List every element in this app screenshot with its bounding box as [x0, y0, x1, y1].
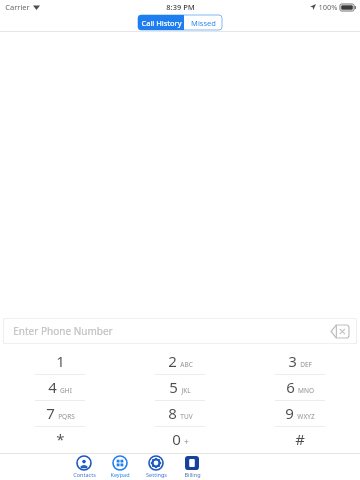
staticText: *: [56, 429, 65, 449]
button[interactable]: Contacts: [66, 454, 102, 480]
button[interactable]: 8: [120, 401, 240, 427]
staticText: JKL: [181, 386, 191, 395]
staticText: 3: [288, 351, 297, 371]
staticText: 6: [286, 377, 295, 397]
staticText: 9: [285, 403, 294, 423]
button[interactable]: 2: [120, 349, 240, 375]
button[interactable]: *: [0, 427, 120, 453]
staticText: Contacts: [73, 471, 96, 478]
button[interactable]: Settings: [138, 454, 174, 480]
staticText: DEF: [300, 360, 312, 369]
staticText: 1: [56, 351, 65, 371]
staticText: 5: [169, 377, 178, 397]
staticText: Billing: [184, 471, 201, 478]
staticText: Keypad: [110, 471, 130, 478]
staticText: PQRS: [58, 412, 75, 421]
button[interactable]: 0: [120, 427, 240, 453]
staticText: 0: [172, 429, 181, 449]
staticText: WXYZ: [297, 412, 315, 421]
staticText: Enter Phone Number: [13, 324, 113, 338]
staticText: Missed: [191, 18, 216, 28]
button[interactable]: Enter Phone Number: [3, 318, 357, 344]
button[interactable]: 7: [0, 401, 120, 427]
staticText: Call History: [141, 18, 182, 28]
staticText: ABC: [180, 360, 193, 369]
button[interactable]: 9: [240, 401, 360, 427]
staticText: MNO: [298, 386, 314, 395]
button[interactable]: 3: [240, 349, 360, 375]
button[interactable]: Delete: [331, 325, 349, 338]
staticText: 2: [168, 351, 177, 371]
staticText: Settings: [146, 471, 167, 478]
staticText: 7: [46, 403, 55, 423]
staticText: 4: [48, 377, 57, 397]
button[interactable]: 4: [0, 375, 120, 401]
staticText: GHI: [60, 386, 72, 395]
button[interactable]: 5: [120, 375, 240, 401]
button[interactable]: 6: [240, 375, 360, 401]
button[interactable]: 1: [0, 349, 120, 375]
button[interactable]: Missed: [184, 15, 222, 30]
button[interactable]: Call History: [138, 15, 184, 30]
staticText: 100%: [318, 2, 338, 12]
staticText: +: [184, 436, 189, 447]
button[interactable]: #: [240, 427, 360, 453]
button[interactable]: Keypad: [102, 454, 138, 480]
button[interactable]: Billing: [174, 454, 210, 480]
staticText: Carrier: [5, 2, 30, 12]
staticText: TUV: [180, 412, 193, 421]
staticText: #: [295, 429, 305, 449]
staticText: 8:39 PM: [166, 2, 195, 12]
staticText: 8: [168, 403, 177, 423]
